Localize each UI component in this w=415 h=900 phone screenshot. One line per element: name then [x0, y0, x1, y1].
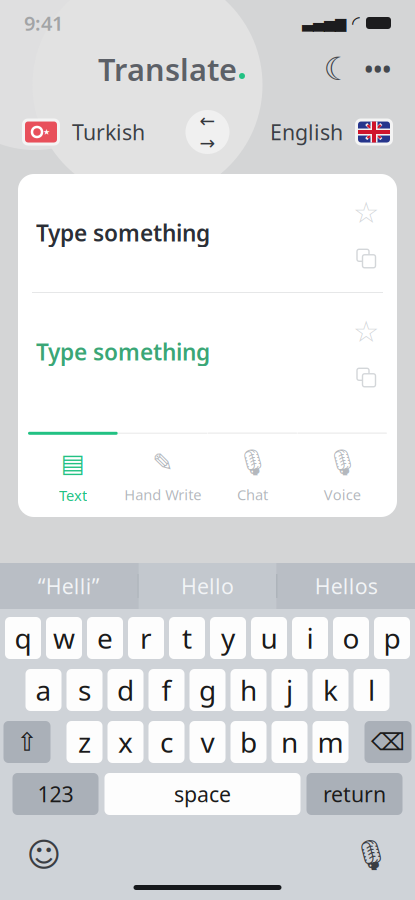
button[interactable]: d — [107, 669, 143, 711]
button[interactable]: x — [107, 721, 143, 763]
staticText: o — [342, 619, 359, 657]
button[interactable]: m — [312, 721, 348, 763]
staticText: Chat — [237, 485, 268, 504]
button[interactable]: Shift — [3, 721, 50, 763]
staticText: f — [161, 671, 171, 709]
staticText: ▃▄▅▆ — [302, 15, 346, 31]
button[interactable]: z — [66, 721, 102, 763]
button[interactable]: e — [87, 617, 123, 659]
staticText: w — [53, 619, 75, 657]
staticText: n — [281, 723, 298, 761]
staticText: h — [240, 671, 257, 709]
staticText: 123 — [37, 780, 73, 808]
staticText: ⌫ — [371, 728, 405, 756]
staticText: 🎙 — [326, 448, 358, 477]
button[interactable]: Swap languages — [185, 110, 229, 154]
staticText: x — [118, 723, 133, 761]
staticText: z — [78, 723, 91, 761]
staticText: 🎙 — [236, 448, 268, 477]
button[interactable]: English — [270, 118, 393, 146]
staticText: y — [221, 619, 235, 657]
staticText: Hello — [181, 572, 234, 600]
button[interactable]: More options — [363, 52, 393, 86]
staticText: Turkish — [72, 118, 145, 146]
button[interactable]: Dark mode — [321, 52, 355, 86]
button[interactable]: b — [230, 721, 266, 763]
staticText: “Helli” — [38, 572, 100, 600]
button[interactable]: Favorite translation — [353, 315, 379, 348]
staticText: ◜ — [352, 12, 360, 34]
button[interactable]: w — [46, 617, 82, 659]
button[interactable]: ★ — [22, 118, 145, 146]
staticText: Type something — [36, 218, 210, 248]
button[interactable]: j — [271, 669, 307, 711]
staticText: ✎ — [152, 448, 173, 477]
staticText: ▤ — [61, 449, 85, 478]
button[interactable]: p — [374, 617, 410, 659]
staticText: e — [97, 619, 113, 657]
staticText: ☺ — [26, 836, 61, 874]
button[interactable]: i — [292, 617, 328, 659]
button[interactable]: 🎙 — [297, 432, 387, 516]
staticText: ⇧ — [16, 728, 37, 756]
staticText: ✕ — [361, 115, 386, 149]
staticText: g — [199, 671, 216, 709]
button[interactable]: s — [66, 669, 102, 711]
staticText: s — [78, 671, 91, 709]
button[interactable]: Hello — [139, 563, 276, 609]
staticText: ☾ — [323, 51, 352, 87]
staticText: v — [200, 723, 214, 761]
button[interactable]: f — [148, 669, 184, 711]
button[interactable]: y — [210, 617, 246, 659]
staticText: 🎙 — [352, 838, 389, 872]
staticText: Translate — [98, 49, 237, 89]
staticText: c — [160, 723, 173, 761]
button[interactable]: return — [306, 773, 402, 815]
button[interactable]: a — [25, 669, 61, 711]
button[interactable]: g — [189, 669, 225, 711]
staticText: ☆ — [353, 196, 379, 229]
staticText: t — [182, 619, 192, 657]
button[interactable]: Dictation — [349, 837, 393, 873]
button[interactable]: r — [128, 617, 164, 659]
button[interactable]: u — [251, 617, 287, 659]
staticText: j — [286, 671, 293, 709]
button[interactable]: Backspace — [364, 721, 411, 763]
staticText: Voice — [324, 485, 361, 504]
button[interactable]: v — [189, 721, 225, 763]
button[interactable]: k — [312, 669, 348, 711]
button[interactable]: ▤ — [28, 432, 118, 517]
staticText: u — [260, 619, 277, 657]
staticText: English — [270, 118, 343, 146]
button[interactable]: space — [104, 773, 300, 815]
button[interactable]: Favorite source text — [353, 196, 379, 229]
button[interactable]: Emoji — [22, 837, 66, 873]
button[interactable]: Copy translation — [355, 366, 377, 388]
staticText: Hellos — [315, 572, 378, 600]
staticText: return — [323, 780, 386, 808]
staticText: m — [317, 723, 343, 761]
staticText: Type something — [36, 337, 210, 367]
button[interactable]: h — [230, 669, 266, 711]
button[interactable]: 123 — [12, 773, 98, 815]
button[interactable]: n — [271, 721, 307, 763]
staticText: space — [174, 780, 231, 808]
button[interactable]: “Helli” — [0, 563, 138, 609]
button[interactable]: 🎙 — [207, 432, 297, 516]
button[interactable]: ✎ — [118, 432, 208, 516]
button[interactable]: Copy source text — [355, 247, 377, 269]
staticText: l — [368, 671, 375, 709]
staticText: ← — [199, 110, 215, 131]
button[interactable]: o — [333, 617, 369, 659]
button[interactable]: c — [148, 721, 184, 763]
staticText: r — [140, 619, 152, 657]
staticText: → — [199, 132, 215, 154]
button[interactable]: Hellos — [277, 563, 415, 609]
staticText: Text — [59, 485, 87, 505]
button[interactable]: l — [353, 669, 389, 711]
staticText: p — [383, 619, 400, 657]
button[interactable]: q — [5, 617, 41, 659]
button[interactable]: t — [169, 617, 205, 659]
staticText: q — [14, 619, 31, 657]
staticText: a — [35, 671, 51, 709]
